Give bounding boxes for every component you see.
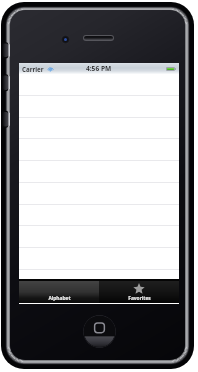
other: Favorites xyxy=(132,283,146,295)
button[interactable]: Alphabet xyxy=(19,281,99,303)
staticText: Carrier xyxy=(22,65,44,73)
button[interactable] xyxy=(19,226,179,248)
button[interactable] xyxy=(19,248,179,270)
button[interactable]: Favorites xyxy=(99,281,179,303)
button[interactable] xyxy=(19,96,179,118)
staticText: 4:56 PM xyxy=(86,64,112,73)
button[interactable] xyxy=(19,139,179,161)
staticText: Favorites xyxy=(128,295,151,302)
button[interactable] xyxy=(19,269,179,279)
button[interactable] xyxy=(19,204,179,226)
button[interactable] xyxy=(19,161,179,183)
button[interactable] xyxy=(19,183,179,205)
button[interactable] xyxy=(19,117,179,139)
staticText: Alphabet xyxy=(48,295,71,302)
button[interactable]: Home xyxy=(83,315,116,348)
button[interactable] xyxy=(19,74,179,96)
